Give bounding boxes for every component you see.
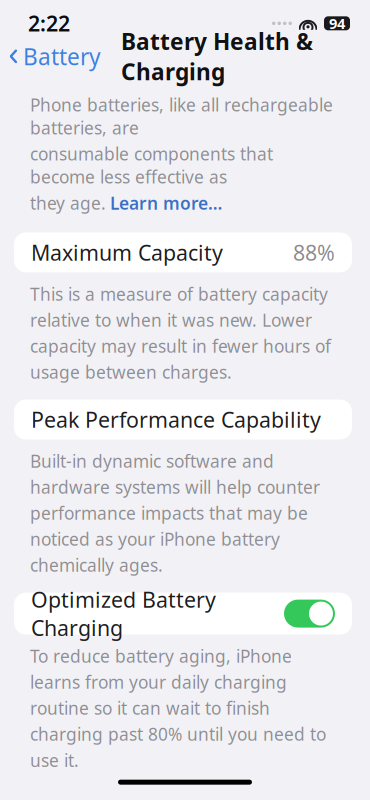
staticText: 2:22 [28,9,70,37]
staticText: Peak Performance Capability [31,405,321,434]
button[interactable]: Battery [0,35,107,77]
staticText: Battery Health & Charging [121,26,313,86]
staticText: consumable components that become less e… [30,142,273,188]
staticText: Built-in dynamic software and hardware s… [30,449,320,577]
staticText: Optimized Battery Charging [31,585,216,642]
staticText: Battery [23,41,101,71]
staticText: 94 [329,14,345,33]
button[interactable]: Learn more… [110,191,222,214]
staticText: 88% [293,238,335,267]
staticText: Maximum Capacity [31,238,223,267]
staticText: To reduce battery aging, iPhone learns f… [30,645,326,772]
staticText: Phone batteries, like all rechargeable b… [30,93,333,139]
staticText: Learn more… [110,191,222,214]
staticText: This is a measure of battery capacity re… [30,282,331,383]
button[interactable]: Optimized Battery Charging [14,593,352,635]
staticText: they age. [30,191,106,214]
button[interactable]: Peak Performance Capability [14,399,352,439]
button[interactable]: Maximum Capacity [14,232,352,272]
